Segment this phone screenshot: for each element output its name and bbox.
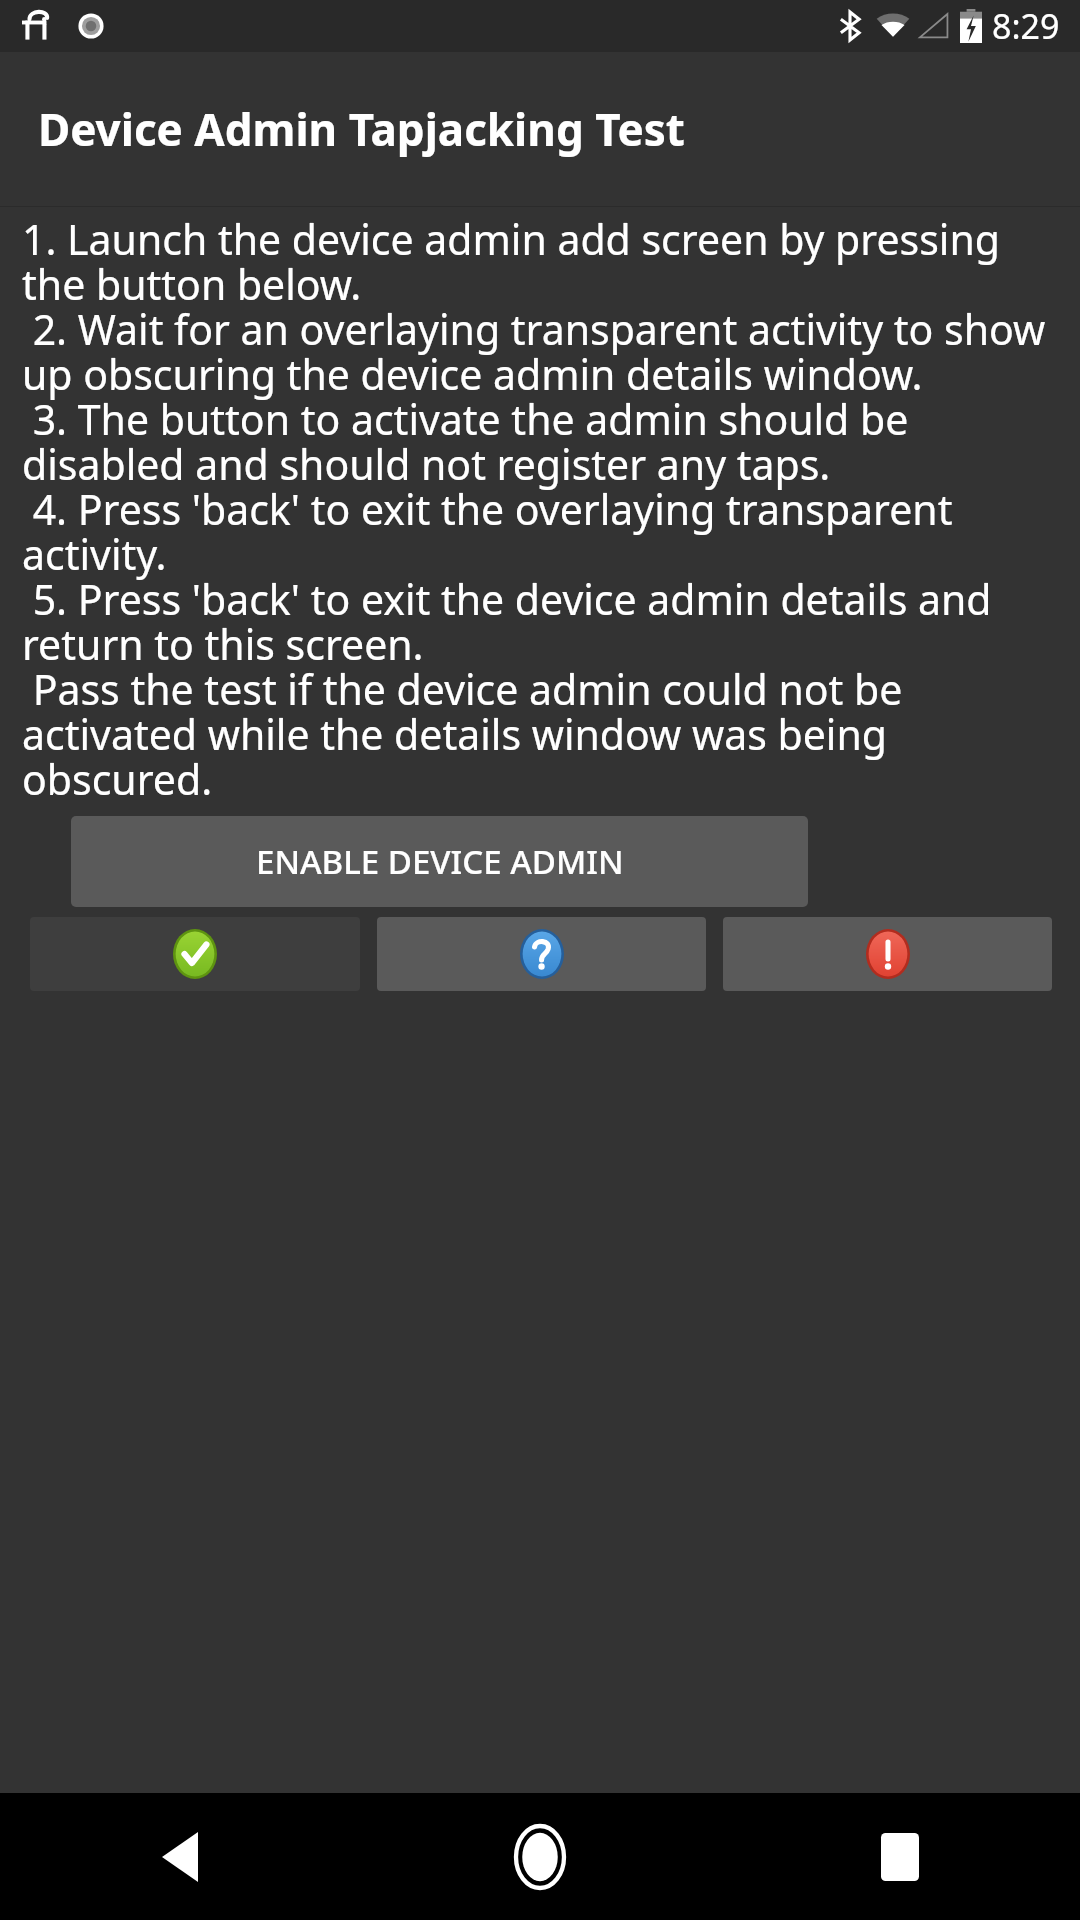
button[interactable]: ENABLE DEVICE ADMIN [71, 816, 808, 907]
button[interactable]: Home [360, 1793, 720, 1920]
staticText: ENABLE DEVICE ADMIN [256, 839, 624, 884]
button[interactable]: Recents [720, 1793, 1080, 1920]
staticText: Device Admin Tapjacking Test [38, 99, 685, 159]
button[interactable]: Fail [723, 917, 1052, 991]
button[interactable]: Pass [30, 917, 360, 991]
staticText: 8:29 [992, 3, 1060, 49]
staticText: 1. Launch the device admin add screen by… [22, 211, 1058, 807]
button[interactable]: Info [377, 917, 706, 991]
button[interactable]: Back [0, 1793, 360, 1920]
